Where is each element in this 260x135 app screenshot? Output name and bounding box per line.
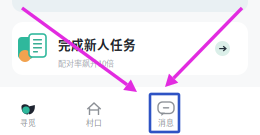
staticText: 配对率飙升10倍: [58, 57, 114, 69]
button[interactable]: 村口: [74, 102, 114, 128]
staticText: 村口: [86, 117, 102, 128]
button[interactable]: 完成新人任务: [12, 22, 248, 75]
button[interactable]: 寻觅: [8, 102, 48, 128]
staticText: 寻觅: [20, 117, 36, 128]
staticText: 消息: [158, 117, 174, 128]
button[interactable]: 消息: [146, 102, 186, 128]
staticText: 完成新人任务: [58, 35, 136, 53]
